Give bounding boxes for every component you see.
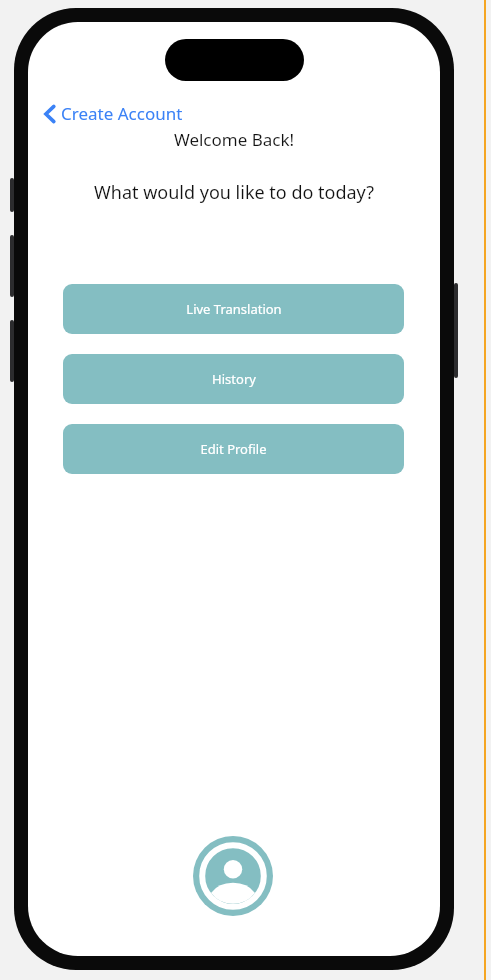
button[interactable]: Profile <box>193 836 273 916</box>
staticText: Live Translation <box>186 300 282 318</box>
button[interactable]: Edit Profile <box>63 424 404 474</box>
staticText: Create Account <box>61 102 183 125</box>
staticText: History <box>212 370 256 388</box>
staticText: Welcome Back! <box>28 128 440 151</box>
button[interactable]: Live Translation <box>63 284 404 334</box>
button[interactable]: Create Account <box>40 100 187 127</box>
staticText: Edit Profile <box>200 440 267 458</box>
button[interactable]: History <box>63 354 404 404</box>
staticText: What would you like to do today? <box>28 180 440 205</box>
